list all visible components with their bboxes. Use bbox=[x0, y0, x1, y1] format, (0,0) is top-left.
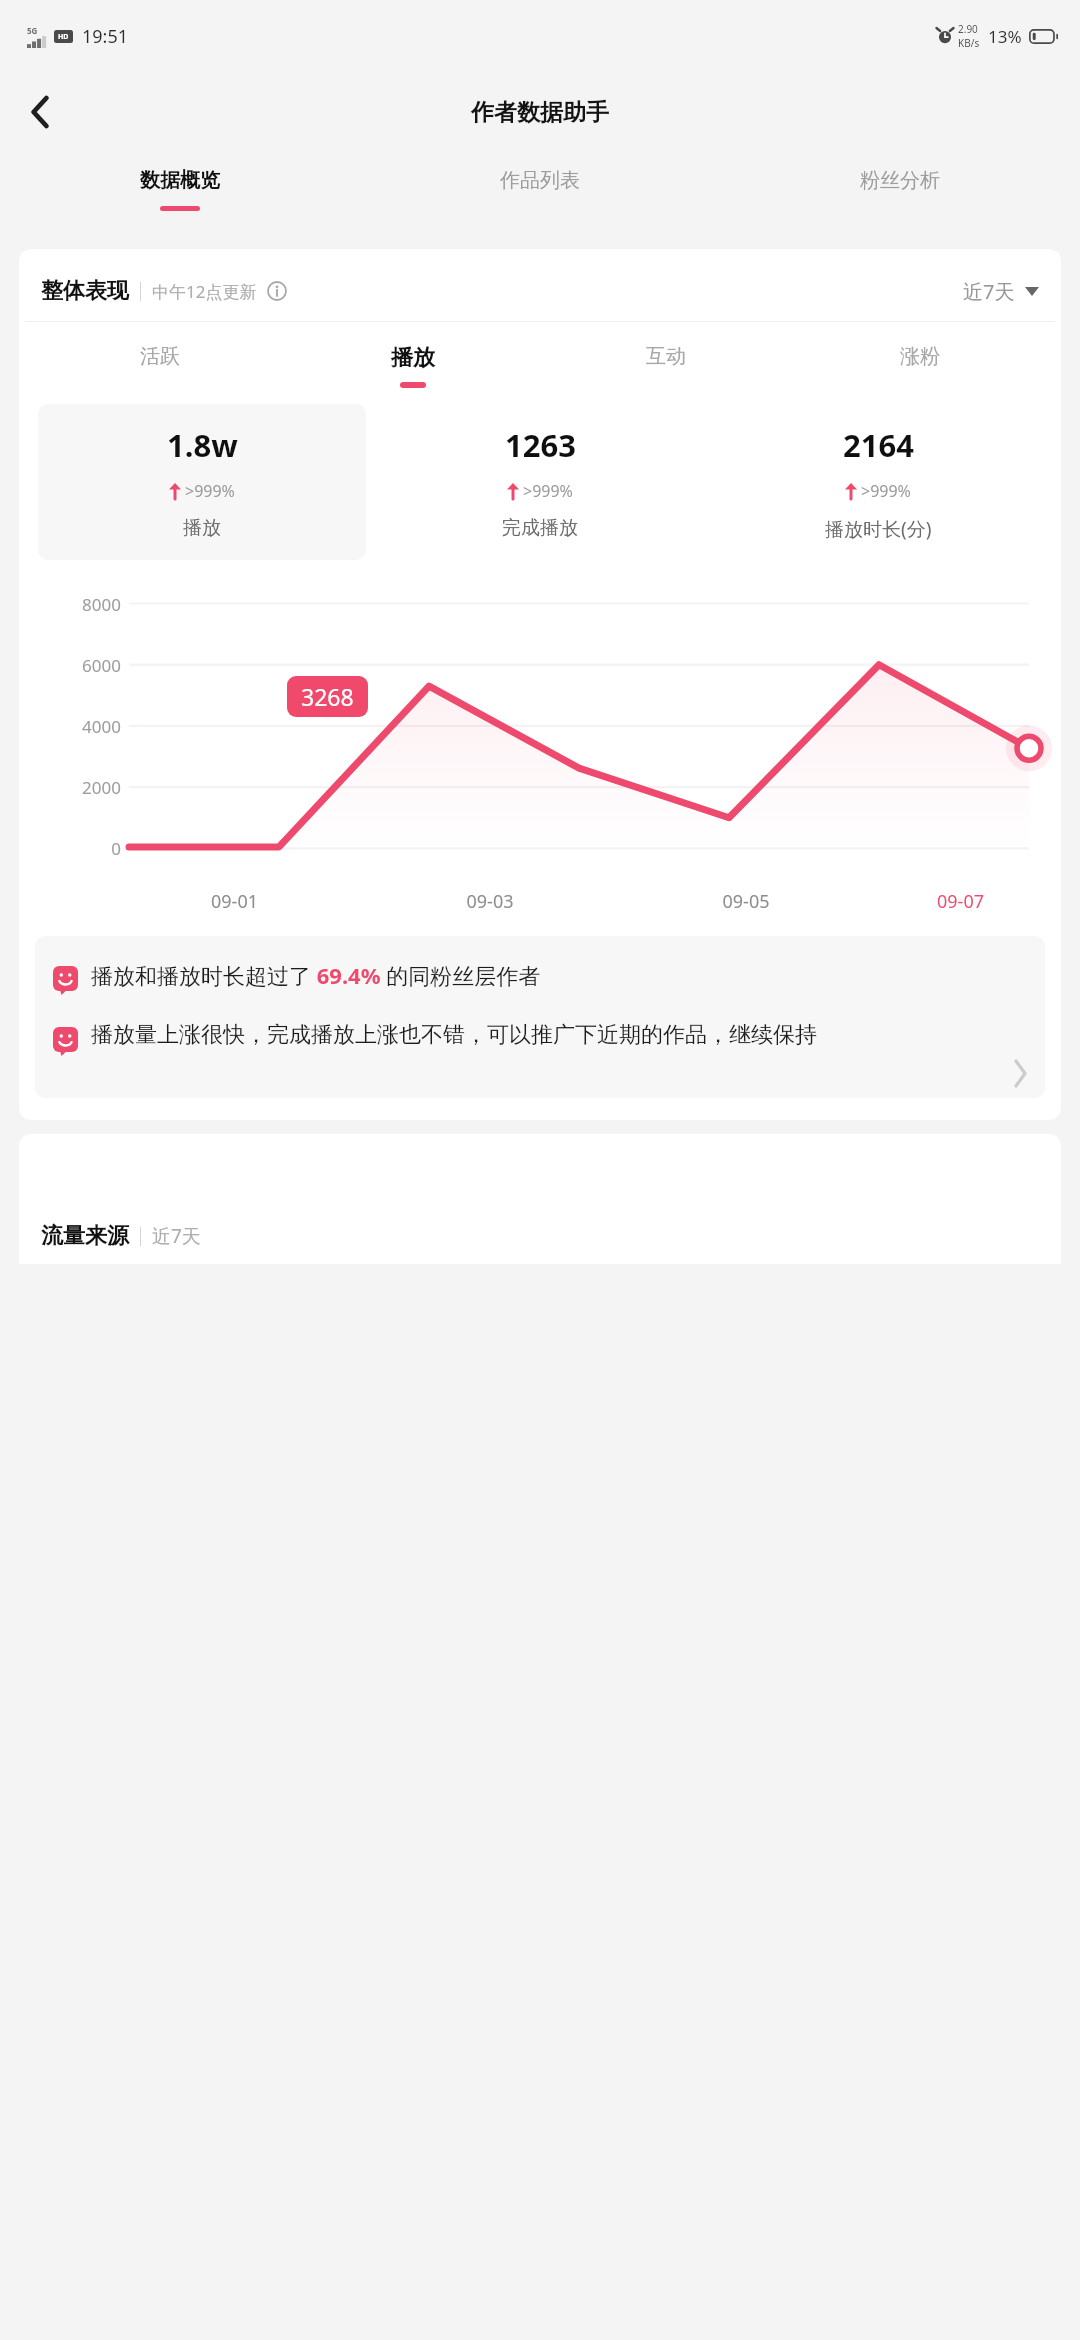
button[interactable]: 数据概览 bbox=[0, 152, 360, 232]
staticText: 5G bbox=[27, 25, 38, 36]
staticText: 09-05 bbox=[618, 889, 874, 914]
button[interactable]: Back bbox=[10, 82, 70, 142]
staticText: 0 bbox=[35, 837, 121, 860]
staticText: 13% bbox=[988, 25, 1022, 48]
staticText: 09-03 bbox=[362, 889, 618, 914]
staticText: 数据概览 bbox=[140, 168, 220, 193]
staticText: 4000 bbox=[35, 715, 121, 738]
staticText: 1.8w bbox=[167, 424, 238, 466]
staticText: 3268 bbox=[301, 681, 354, 712]
button[interactable]: 互动 bbox=[539, 344, 793, 385]
staticText: 完成播放 bbox=[502, 516, 578, 540]
button[interactable]: 近7天 bbox=[963, 278, 1039, 305]
button[interactable]: 播放 bbox=[286, 344, 539, 388]
staticText: 09-07 bbox=[874, 889, 1047, 914]
staticText: 播放和播放时长超过了 69.4% 的同粉丝层作者 bbox=[91, 960, 541, 990]
staticText: 流量来源 bbox=[41, 1222, 129, 1250]
staticText: 互动 bbox=[646, 344, 686, 369]
staticText: 播放 bbox=[391, 344, 435, 372]
staticText: 19:51 bbox=[82, 24, 129, 49]
staticText: 近7天 bbox=[963, 278, 1015, 305]
button[interactable]: Info bbox=[265, 279, 289, 303]
staticText: 近7天 bbox=[152, 1223, 201, 1249]
staticText: 中午12点更新 bbox=[152, 280, 257, 303]
button[interactable]: 播放和播放时长超过了 69.4% 的同粉丝层作者 bbox=[35, 936, 1045, 1098]
staticText: 播放量上涨很快，完成播放上涨也不错，可以推广下近期的作品，继续保持 bbox=[91, 1021, 817, 1049]
staticText: 09-01 bbox=[107, 889, 362, 914]
button[interactable]: 作品列表 bbox=[360, 152, 720, 232]
staticText: 播放时长(分) bbox=[825, 516, 932, 542]
staticText: 1263 bbox=[505, 424, 576, 466]
staticText: 播放 bbox=[183, 516, 221, 540]
staticText: 2164 bbox=[843, 424, 914, 466]
staticText: 粉丝分析 bbox=[860, 168, 940, 193]
button[interactable]: 涨粉 bbox=[793, 344, 1047, 385]
button[interactable]: 活跃 bbox=[33, 344, 286, 385]
staticText: 2000 bbox=[35, 776, 121, 799]
staticText: 2.90 bbox=[958, 22, 978, 36]
staticText: 8000 bbox=[35, 593, 121, 616]
staticText: 作品列表 bbox=[500, 168, 580, 193]
staticText: >999% bbox=[861, 480, 911, 502]
staticText: 6000 bbox=[35, 654, 121, 677]
staticText: HD bbox=[58, 32, 69, 42]
staticText: 整体表现 bbox=[41, 277, 129, 305]
staticText: 涨粉 bbox=[900, 344, 940, 369]
staticText: 作者数据助手 bbox=[471, 98, 609, 127]
button[interactable]: 1.8w bbox=[38, 404, 366, 560]
staticText: KB/s bbox=[958, 36, 980, 50]
staticText: >999% bbox=[523, 480, 573, 502]
button[interactable]: 粉丝分析 bbox=[720, 152, 1080, 232]
staticText: >999% bbox=[185, 480, 235, 502]
staticText: 活跃 bbox=[140, 344, 180, 369]
button[interactable]: 1263 bbox=[376, 404, 704, 560]
button[interactable]: 2164 bbox=[714, 404, 1042, 562]
